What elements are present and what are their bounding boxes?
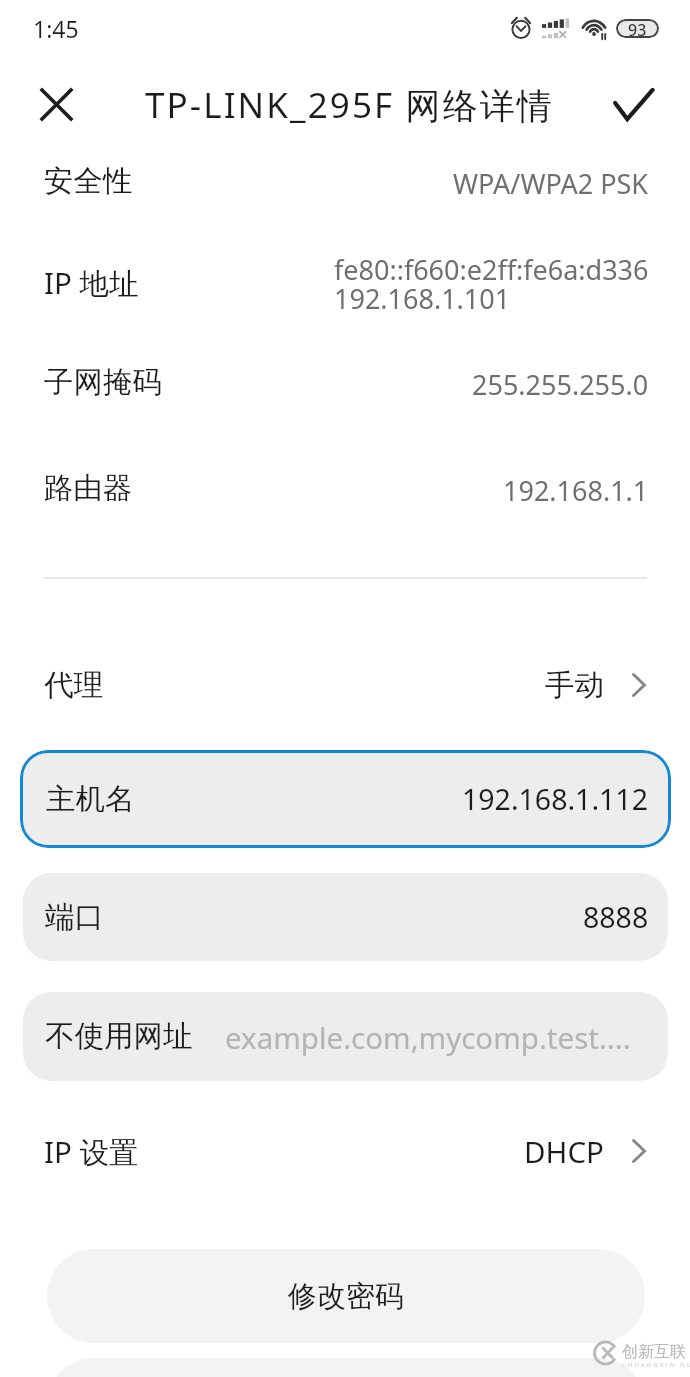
staticText: 创新互联 [622,1342,686,1362]
staticText: 安全性 [44,163,133,200]
staticText: 255.255.255.0 [472,366,649,403]
staticText: 修改密码 [288,1278,404,1315]
button[interactable]: 代理 [0,647,690,723]
staticText: CHUANGXIN HULIAN [622,1361,690,1369]
staticText: IP 设置 [44,1131,139,1171]
button[interactable]: Confirm [605,76,661,132]
staticText: 手动 [545,667,604,704]
button[interactable]: 子网掩码 [0,340,690,424]
staticText: fe80::f660:e2ff:fe6a:d336 192.168.1.101 [334,251,649,317]
button[interactable]: Close [28,76,84,132]
staticText: 路由器 [44,470,133,507]
button[interactable]: 修改密码 [47,1249,645,1343]
staticText: 192.168.1.1 [503,472,649,509]
staticText: 8888 [583,898,649,937]
staticText: 主机名 [46,781,135,818]
staticText: 93 [628,19,647,38]
staticText: 代理 [44,667,103,704]
staticText: 1:45 [33,13,79,44]
staticText: 192.168.1.112 [462,780,648,819]
button[interactable]: 不使用网址 [23,992,668,1081]
button[interactable]: More options [47,1358,645,1377]
staticText: IP 地址 [44,262,139,302]
staticText: 端口 [45,899,104,936]
button[interactable]: 安全性 [0,139,690,223]
button[interactable]: 主机名 [20,750,671,848]
button[interactable]: IP 设置 [0,1113,690,1189]
staticText: example.com,mycomp.test.... [225,1017,631,1057]
staticText: WPA/WPA2 PSK [453,165,649,202]
staticText: 子网掩码 [44,364,162,401]
button[interactable]: 路由器 [0,446,690,530]
staticText: 不使用网址 [45,1018,193,1055]
button[interactable]: 端口 [23,873,668,961]
staticText: TP-LINK_295F 网络详情 [145,81,554,129]
button[interactable]: IP 地址 [0,240,690,324]
staticText: DHCP [524,1131,604,1171]
